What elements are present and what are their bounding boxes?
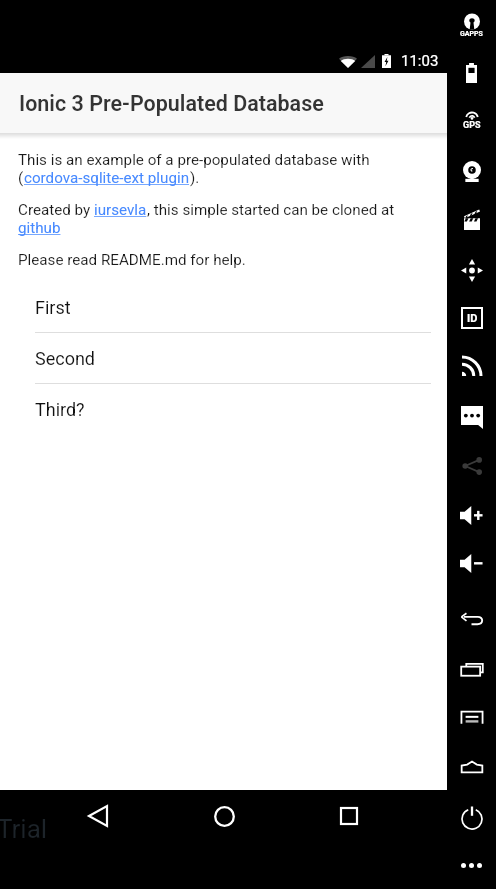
button[interactable]: Network (447, 344, 496, 388)
staticText: Created by (18, 201, 94, 219)
button[interactable]: github (18, 219, 61, 237)
button[interactable]: cordova-sqlite-ext plugin (24, 169, 190, 187)
staticText: This is an example of a pre-populated da… (18, 151, 370, 169)
button[interactable]: First (0, 282, 447, 332)
button[interactable]: Volume up (447, 493, 496, 537)
button[interactable]: Share (447, 444, 496, 488)
button[interactable]: Device ID (447, 296, 496, 340)
button[interactable]: More options (447, 843, 496, 887)
button[interactable]: Home (447, 745, 496, 789)
staticText: Ionic 3 Pre-Populated Database (19, 91, 324, 116)
staticText: Please read README.md for help. (18, 251, 246, 269)
staticText: Third? (35, 399, 85, 420)
staticText: ( (18, 169, 24, 187)
button[interactable]: Webcam (447, 149, 496, 193)
button[interactable]: Back (447, 598, 496, 642)
staticText: First (35, 297, 71, 318)
button[interactable]: Messages (447, 395, 496, 439)
staticText: 11:03 (401, 52, 439, 70)
staticText: GPS (463, 120, 481, 131)
staticText: ID (467, 312, 478, 325)
button[interactable]: Recents (324, 791, 374, 841)
button[interactable]: Menu (447, 695, 496, 739)
button[interactable]: Back (73, 791, 123, 841)
button[interactable]: iursevla (94, 201, 147, 219)
button[interactable]: Battery (447, 51, 496, 95)
button[interactable]: Home (199, 791, 249, 841)
staticText: , this simple started can be cloned at (147, 201, 395, 219)
button[interactable]: Power (447, 795, 496, 839)
button[interactable]: Third? (0, 384, 447, 434)
button[interactable]: Overview (447, 647, 496, 691)
button[interactable]: Google Apps (447, 4, 496, 48)
staticText: GAPPS (460, 30, 483, 38)
button[interactable]: D-pad (447, 248, 496, 292)
button[interactable]: GPS (447, 99, 496, 143)
button[interactable]: Second (0, 333, 447, 383)
button[interactable]: Volume down (447, 541, 496, 585)
staticText: Second (35, 348, 96, 369)
staticText: ). (190, 169, 200, 187)
button[interactable]: Record screen (447, 197, 496, 241)
staticText: Trial (0, 814, 48, 844)
